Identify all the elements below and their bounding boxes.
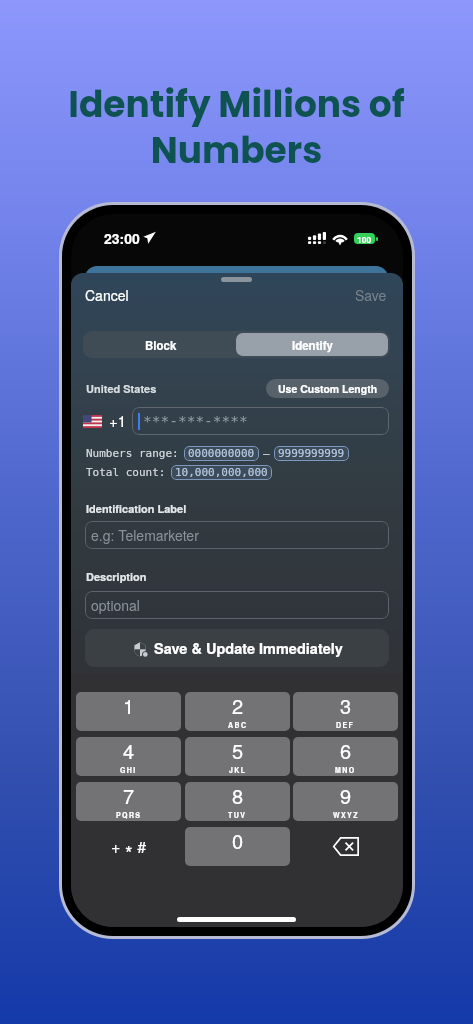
staticText: PQRS	[116, 810, 142, 820]
staticText: +1	[109, 410, 127, 431]
button[interactable]: 2	[185, 692, 290, 731]
staticText: 100	[357, 233, 372, 244]
staticText: 5	[232, 737, 244, 765]
staticText: 2	[232, 692, 244, 720]
staticText: 9	[340, 782, 352, 810]
staticText: Description	[86, 569, 147, 585]
button[interactable]: + ∗ #	[76, 827, 181, 866]
staticText: 0000000000	[188, 447, 255, 460]
staticText: TUV	[228, 810, 247, 820]
staticText: 1	[123, 692, 135, 720]
staticText: United States	[86, 381, 157, 397]
staticText: 3	[340, 692, 352, 720]
button[interactable]: 7	[76, 782, 181, 821]
button[interactable]: 8	[185, 782, 290, 821]
staticText: Use Custom Length	[278, 381, 378, 396]
staticText: ABC	[228, 720, 248, 730]
button[interactable]: 9	[293, 782, 398, 821]
button[interactable]: 4	[76, 737, 181, 776]
staticText: 23:00	[104, 228, 140, 248]
staticText: 7	[123, 782, 135, 810]
staticText: GHI	[120, 765, 137, 775]
button[interactable]: Use Custom Length	[266, 379, 389, 398]
staticText: 0	[232, 827, 244, 855]
staticText: Identify	[292, 337, 333, 353]
staticText: + ∗ #	[111, 835, 147, 858]
staticText: optional	[91, 595, 140, 615]
button[interactable]: Cancel	[82, 283, 132, 307]
staticText: Save & Update Immediately	[154, 638, 343, 659]
staticText: ***-***-****	[143, 413, 248, 430]
button[interactable]: 3	[293, 692, 398, 731]
staticText: WXYZ	[333, 810, 359, 820]
button[interactable]: 6	[293, 737, 398, 776]
staticText: Cancel	[85, 285, 129, 305]
staticText: 6	[340, 737, 352, 765]
staticText: MNO	[335, 765, 356, 775]
button[interactable]: ***-***-****	[132, 407, 389, 435]
staticText: 10,000,000,000	[175, 466, 268, 479]
staticText: 8	[232, 782, 244, 810]
staticText: Numbers range:	[86, 447, 179, 460]
staticText: –	[263, 447, 270, 460]
button[interactable]: 0	[185, 827, 290, 866]
staticText: Total count:	[86, 466, 166, 479]
button[interactable]: 1	[76, 692, 181, 731]
staticText: 9999999999	[278, 447, 345, 460]
button[interactable]: Delete	[293, 827, 398, 866]
staticText: JKL	[229, 765, 247, 775]
staticText: 4	[123, 737, 135, 765]
button[interactable]: Save & Update Immediately	[85, 629, 389, 667]
button[interactable]: Save	[352, 283, 390, 307]
staticText: Save	[355, 285, 387, 305]
staticText: Identification Label	[86, 501, 187, 517]
staticText: Block	[145, 337, 177, 353]
staticText: e.g: Telemarketer	[91, 525, 199, 545]
button[interactable]: 5	[185, 737, 290, 776]
staticText: DEF	[336, 720, 355, 730]
button[interactable]: e.g: Telemarketer	[85, 521, 389, 549]
button[interactable]: Identify	[236, 333, 388, 356]
button[interactable]: optional	[85, 591, 389, 619]
staticText: Identify Millions of Numbers	[68, 79, 405, 176]
button[interactable]: Block	[85, 333, 236, 356]
